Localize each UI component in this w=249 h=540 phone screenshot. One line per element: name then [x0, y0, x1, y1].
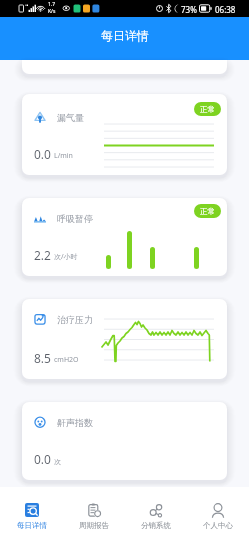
staticText: 0.0 — [34, 451, 51, 467]
button[interactable]: 周期报告 — [63, 487, 125, 540]
staticText: 2.2 — [34, 247, 51, 263]
staticText: 个人中心 — [203, 521, 233, 530]
staticText: 0.0 — [34, 146, 51, 162]
staticText: cmH2O — [54, 355, 79, 365]
staticText: 每日详情 — [17, 521, 47, 530]
staticText: 周期报告 — [79, 521, 109, 530]
staticText: 73% — [181, 4, 197, 15]
button[interactable]: 治疗压力 — [22, 299, 227, 379]
staticText: L/min — [54, 151, 73, 161]
staticText: 呼吸暂停 — [57, 213, 93, 224]
staticText: 次/小时 — [54, 252, 78, 262]
button[interactable]: 分销系统 — [125, 487, 187, 540]
button[interactable]: 漏气量 — [22, 94, 227, 175]
staticText: 鼾声指数 — [57, 417, 93, 428]
button[interactable]: 鼾声指数 — [22, 402, 227, 480]
staticText: 正常 — [200, 207, 215, 216]
staticText: 06:38 — [215, 4, 236, 15]
staticText: 漏气量 — [57, 112, 84, 123]
staticText: 分销系统 — [141, 521, 171, 530]
button[interactable]: 呼吸暂停 — [22, 198, 227, 276]
staticText: 每日详情 — [101, 28, 149, 43]
staticText: 1.7 — [48, 1, 56, 8]
staticText: K/s — [48, 8, 56, 15]
staticText: 治疗压力 — [57, 314, 93, 325]
staticText: 8.5 — [34, 350, 51, 366]
button[interactable]: 每日详情 — [0, 487, 63, 540]
staticText: 正常 — [200, 105, 215, 114]
staticText: 次 — [54, 457, 61, 466]
button[interactable]: 个人中心 — [187, 487, 249, 540]
